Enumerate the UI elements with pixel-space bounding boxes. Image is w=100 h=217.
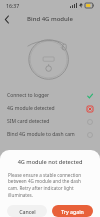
button[interactable]: Bind 4G module to dash cam: [0, 128, 100, 141]
staticText: Bind 4G module: [0, 15, 100, 23]
staticText: Connect to logger: [7, 92, 86, 99]
button[interactable]: Cancel: [7, 205, 47, 217]
staticText: 4G module not detected: [7, 158, 93, 166]
staticText: Bind 4G module to dash cam: [7, 131, 86, 138]
staticText: Please ensure a stable connection betwee…: [8, 172, 92, 199]
staticText: Cancel: [19, 208, 36, 215]
staticText: 4G module detected: [7, 105, 86, 112]
button[interactable]: Back: [0, 12, 14, 26]
staticText: SIM card detected: [7, 118, 86, 125]
staticText: 16:37: [6, 2, 20, 9]
button[interactable]: 4G module detected: [0, 102, 100, 115]
button[interactable]: Connect to logger: [0, 89, 100, 102]
staticText: Try again: [61, 208, 84, 215]
button[interactable]: SIM card detected: [0, 115, 100, 128]
button[interactable]: Try again: [52, 205, 93, 217]
